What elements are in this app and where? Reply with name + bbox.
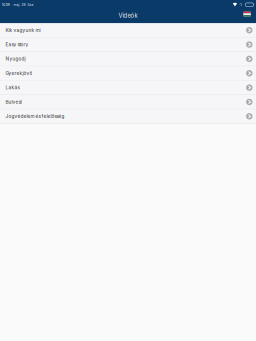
button[interactable]: Bulvest [0, 95, 256, 109]
button[interactable]: Easy story [0, 38, 256, 52]
staticText: Gyerekjövő [5, 70, 32, 76]
staticText: máj. 29. Sze [14, 3, 34, 7]
staticText: 14:09 [2, 3, 10, 7]
staticText: Kik vagyunk mi [5, 27, 40, 33]
staticText: Jogvédelem és felelősség [5, 113, 64, 119]
button[interactable]: Gyerekjövő [0, 66, 256, 81]
button[interactable]: Lakás [0, 81, 256, 95]
button[interactable]: Kik vagyunk mi [0, 23, 256, 38]
button[interactable]: Nyugodj [0, 52, 256, 66]
button[interactable]: Jogvédelem és felelősség [0, 109, 256, 124]
staticText: Lakás [5, 85, 19, 90]
staticText: Easy story [5, 42, 28, 47]
staticText: Videók [118, 12, 137, 19]
staticText: Bulvest [5, 99, 22, 105]
button[interactable]: Nyelv [240, 9, 256, 19]
staticText: Nyugodj [5, 56, 25, 62]
